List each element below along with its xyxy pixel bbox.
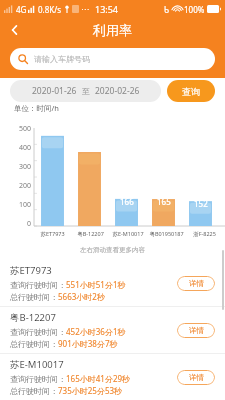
staticText: 552: [46, 125, 60, 136]
staticText: 166: [120, 196, 134, 207]
staticText: 453: [83, 143, 97, 154]
staticText: 利用率: [93, 22, 132, 38]
button[interactable]: 详情: [177, 276, 215, 291]
button[interactable]: 详情: [177, 370, 215, 385]
staticText: 查询行驶时间：: [10, 280, 66, 290]
staticText: 左右滑动查看更多内容: [80, 246, 145, 254]
staticText: 5663小时2秒: [58, 291, 105, 302]
button[interactable]: 详情: [177, 323, 215, 338]
staticText: 2020-01-26: [32, 85, 77, 97]
button[interactable]: 查询: [167, 80, 215, 102]
staticText: 苏ET7973: [10, 264, 52, 277]
staticText: 4G: [16, 4, 27, 15]
staticText: 浙F-8225: [193, 230, 216, 238]
staticText: ⋯: [81, 5, 89, 14]
staticText: 总行驶时间：: [10, 292, 58, 302]
staticText: 0.8K/s: [38, 4, 62, 15]
staticText: 300: [19, 162, 32, 172]
staticText: 详情: [189, 326, 204, 335]
button[interactable]: 2020-01-26: [10, 80, 161, 102]
staticText: 400: [19, 143, 32, 153]
staticText: 粤B01950187: [149, 230, 184, 238]
button[interactable]: 苏ET7973: [0, 260, 225, 306]
button[interactable]: 苏E-M10017: [0, 354, 225, 400]
staticText: 苏E-M10017: [10, 358, 64, 371]
button[interactable]: 请输入车牌号码: [10, 48, 215, 70]
button[interactable]: 粤B-12207: [0, 307, 225, 353]
staticText: 901小时38分7秒: [58, 338, 118, 349]
staticText: 735小时25分53秒: [58, 385, 123, 396]
staticText: 165: [157, 196, 171, 207]
staticText: 100%: [184, 4, 205, 15]
staticText: 551小时51分1秒: [66, 279, 126, 290]
staticText: 苏E-M10017: [112, 230, 144, 238]
staticText: 2020-02-26: [95, 85, 140, 97]
staticText: 500: [19, 124, 32, 134]
staticText: 请输入车牌号码: [34, 54, 90, 64]
staticText: 100: [19, 200, 32, 210]
staticText: 粤B-12207: [77, 230, 104, 238]
staticText: 200: [19, 181, 32, 191]
staticText: 13:54: [95, 3, 119, 15]
staticText: 苏ET7973: [40, 230, 65, 238]
staticText: 粤B-12207: [10, 311, 56, 324]
staticText: 165小时41分29秒: [66, 373, 131, 384]
staticText: 查询行驶时间：: [10, 327, 66, 337]
staticText: 查询: [182, 86, 200, 97]
staticText: 详情: [189, 279, 204, 288]
staticText: 至: [82, 86, 90, 96]
staticText: Ƅ: [164, 4, 170, 15]
staticText: 152: [194, 198, 208, 209]
staticText: 452小时36分1秒: [66, 326, 126, 337]
staticText: 详情: [189, 373, 204, 382]
staticText: 总行驶时间：: [10, 386, 58, 396]
button[interactable]: Back: [0, 18, 30, 42]
staticText: 总行驶时间：: [10, 339, 58, 349]
staticText: 单位：时间/h: [14, 103, 59, 113]
staticText: 查询行驶时间：: [10, 374, 66, 384]
staticText: 0: [27, 219, 32, 229]
